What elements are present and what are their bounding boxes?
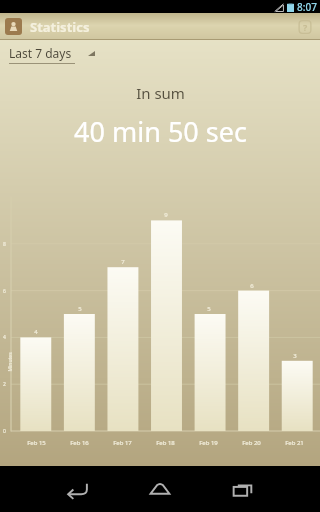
staticText: 7	[121, 258, 125, 266]
staticText: Feb 20	[242, 439, 261, 447]
staticText: In sum	[136, 83, 185, 103]
staticText: ?	[303, 21, 308, 33]
staticText: 40 min 50 sec	[74, 113, 247, 150]
staticText: 6	[250, 282, 254, 290]
button[interactable]: Last 7 days	[6, 45, 98, 64]
button[interactable]: Back	[56, 468, 98, 510]
staticText: Feb 19	[199, 439, 218, 447]
staticText: 8:07	[297, 0, 317, 13]
staticText: 8	[3, 241, 6, 248]
staticText: Feb 18	[156, 439, 175, 447]
button[interactable]: 5	[58, 184, 101, 460]
staticText: Minutes	[6, 351, 13, 371]
button[interactable]: Recent apps	[222, 468, 264, 510]
button[interactable]: 5	[187, 184, 230, 460]
staticText: 2	[3, 381, 6, 388]
staticText: Last 7 days	[9, 45, 72, 61]
staticText: 0	[3, 428, 6, 435]
button[interactable]: 3	[273, 184, 316, 460]
staticText: 6	[3, 288, 6, 295]
staticText: Feb 21	[285, 439, 304, 447]
staticText: Feb 16	[70, 439, 89, 447]
staticText: Feb 17	[113, 439, 132, 447]
button[interactable]: App icon, navigate up	[5, 18, 22, 35]
staticText: Feb 15	[27, 439, 46, 447]
staticText: 3	[293, 352, 297, 360]
staticText: 9	[164, 211, 168, 219]
button[interactable]: 6	[230, 184, 273, 460]
button[interactable]: Home	[139, 468, 181, 510]
staticText: 5	[78, 305, 82, 313]
staticText: 5	[207, 305, 211, 313]
staticText: 4	[34, 328, 38, 336]
button[interactable]: 7	[101, 184, 144, 460]
button[interactable]: 9	[144, 184, 187, 460]
button[interactable]: 4	[14, 184, 58, 460]
staticText: 4	[3, 334, 6, 341]
button[interactable]: Help	[296, 18, 314, 36]
staticText: Statistics	[30, 18, 90, 36]
